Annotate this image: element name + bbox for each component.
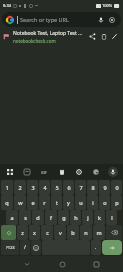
- staticText: 8: [91, 184, 95, 191]
- staticText: k: [98, 214, 101, 221]
- button[interactable]: Copy link: [98, 31, 109, 42]
- button[interactable]: Voice search: [96, 15, 106, 25]
- button[interactable]: /: [20, 240, 30, 255]
- button[interactable]: Recent apps: [89, 257, 103, 271]
- staticText: g: [62, 214, 66, 221]
- button[interactable]: 5: [51, 180, 62, 195]
- button[interactable]: Shift: [1, 225, 16, 240]
- button[interactable]: f: [45, 210, 57, 225]
- staticText: 6: [67, 184, 71, 191]
- button[interactable]: q: [1, 195, 13, 210]
- button[interactable]: .: [91, 240, 101, 255]
- staticText: 1: [5, 184, 9, 191]
- staticText: e: [31, 199, 35, 206]
- button[interactable]: o: [99, 195, 110, 210]
- staticText: x: [33, 229, 36, 236]
- button[interactable]: v: [54, 225, 66, 240]
- button[interactable]: ?123: [1, 240, 19, 255]
- staticText: i: [92, 199, 94, 206]
- staticText: w: [18, 199, 23, 206]
- button[interactable]: Keyboard switcher: [5, 167, 15, 177]
- staticText: u: [79, 199, 83, 206]
- button[interactable]: Themes: [91, 167, 101, 177]
- button[interactable]: 0: [111, 180, 122, 195]
- button[interactable]: d: [32, 210, 44, 225]
- button[interactable]: b: [67, 225, 79, 240]
- staticText: h: [74, 214, 78, 221]
- staticText: 7: [79, 184, 83, 191]
- button[interactable]: a: [6, 210, 18, 225]
- button[interactable]: 7: [75, 180, 86, 195]
- staticText: ?123: [6, 245, 15, 250]
- button[interactable]: Search or type URL: [2, 12, 121, 27]
- button[interactable]: Home: [55, 257, 69, 271]
- staticText: 8:34: [3, 3, 11, 8]
- button[interactable]: Edit query: [109, 31, 120, 42]
- button[interactable]: r: [39, 195, 50, 210]
- staticText: f: [50, 214, 52, 221]
- button[interactable]: t: [51, 195, 62, 210]
- staticText: q: [5, 199, 9, 206]
- button[interactable]: 4: [39, 180, 50, 195]
- button[interactable]: c: [41, 225, 53, 240]
- button[interactable]: Emoji: [31, 240, 41, 255]
- staticText: m: [96, 229, 102, 236]
- button[interactable]: 1: [1, 180, 13, 195]
- staticText: Notebook Test, Laptop Test ...: [13, 30, 83, 37]
- button[interactable]: Go: [102, 240, 122, 255]
- button[interactable]: j: [82, 210, 93, 225]
- staticText: l: [111, 214, 113, 221]
- button[interactable]: Back: [20, 257, 34, 271]
- staticText: 9: [103, 184, 107, 191]
- button[interactable]: Settings: [74, 167, 84, 177]
- staticText: notebookcheck.com: [13, 38, 56, 44]
- button[interactable]: Stickers: [22, 167, 32, 177]
- button[interactable]: Google Lens: [107, 15, 117, 25]
- button[interactable]: i: [87, 195, 98, 210]
- staticText: 2: [18, 184, 22, 191]
- staticText: y: [67, 199, 70, 206]
- staticText: s: [24, 214, 27, 221]
- button[interactable]: 9: [99, 180, 110, 195]
- staticText: c: [46, 229, 49, 236]
- staticText: 0: [115, 184, 119, 191]
- staticText: p: [115, 199, 119, 206]
- button[interactable]: GIF: [39, 167, 49, 177]
- button[interactable]: 6: [63, 180, 74, 195]
- button[interactable]: h: [70, 210, 81, 225]
- button[interactable]: z: [17, 225, 28, 240]
- staticText: a: [10, 214, 14, 221]
- button[interactable]: 3: [27, 180, 38, 195]
- button[interactable]: 2: [14, 180, 26, 195]
- staticText: d: [36, 214, 40, 221]
- button[interactable]: x: [29, 225, 40, 240]
- staticText: 4: [43, 184, 47, 191]
- staticText: 5: [55, 184, 59, 191]
- staticText: v: [59, 229, 62, 236]
- staticText: z: [21, 229, 24, 236]
- button[interactable]: w: [14, 195, 26, 210]
- button[interactable]: Backspace: [106, 225, 122, 240]
- staticText: b: [71, 229, 75, 236]
- button[interactable]: Voice input: [108, 167, 118, 177]
- button[interactable]: 8: [87, 180, 98, 195]
- button[interactable]: u: [75, 195, 86, 210]
- button[interactable]: s: [19, 210, 31, 225]
- staticText: Search or type URL: [20, 16, 96, 23]
- button[interactable]: Notebook Test, Laptop Test ...: [0, 28, 123, 45]
- staticText: o: [103, 199, 107, 206]
- staticText: .: [95, 244, 97, 251]
- button[interactable]: e: [27, 195, 38, 210]
- button[interactable]: l: [106, 210, 117, 225]
- button[interactable]: m: [93, 225, 105, 240]
- button[interactable]: Clipboard: [57, 167, 67, 177]
- button[interactable]: g: [58, 210, 69, 225]
- button[interactable]: Share: [87, 31, 98, 42]
- button[interactable]: k: [94, 210, 105, 225]
- button[interactable]: n: [80, 225, 92, 240]
- button[interactable]: y: [63, 195, 74, 210]
- staticText: n: [84, 229, 88, 236]
- staticText: GIF: [41, 170, 47, 175]
- button[interactable]: p: [111, 195, 122, 210]
